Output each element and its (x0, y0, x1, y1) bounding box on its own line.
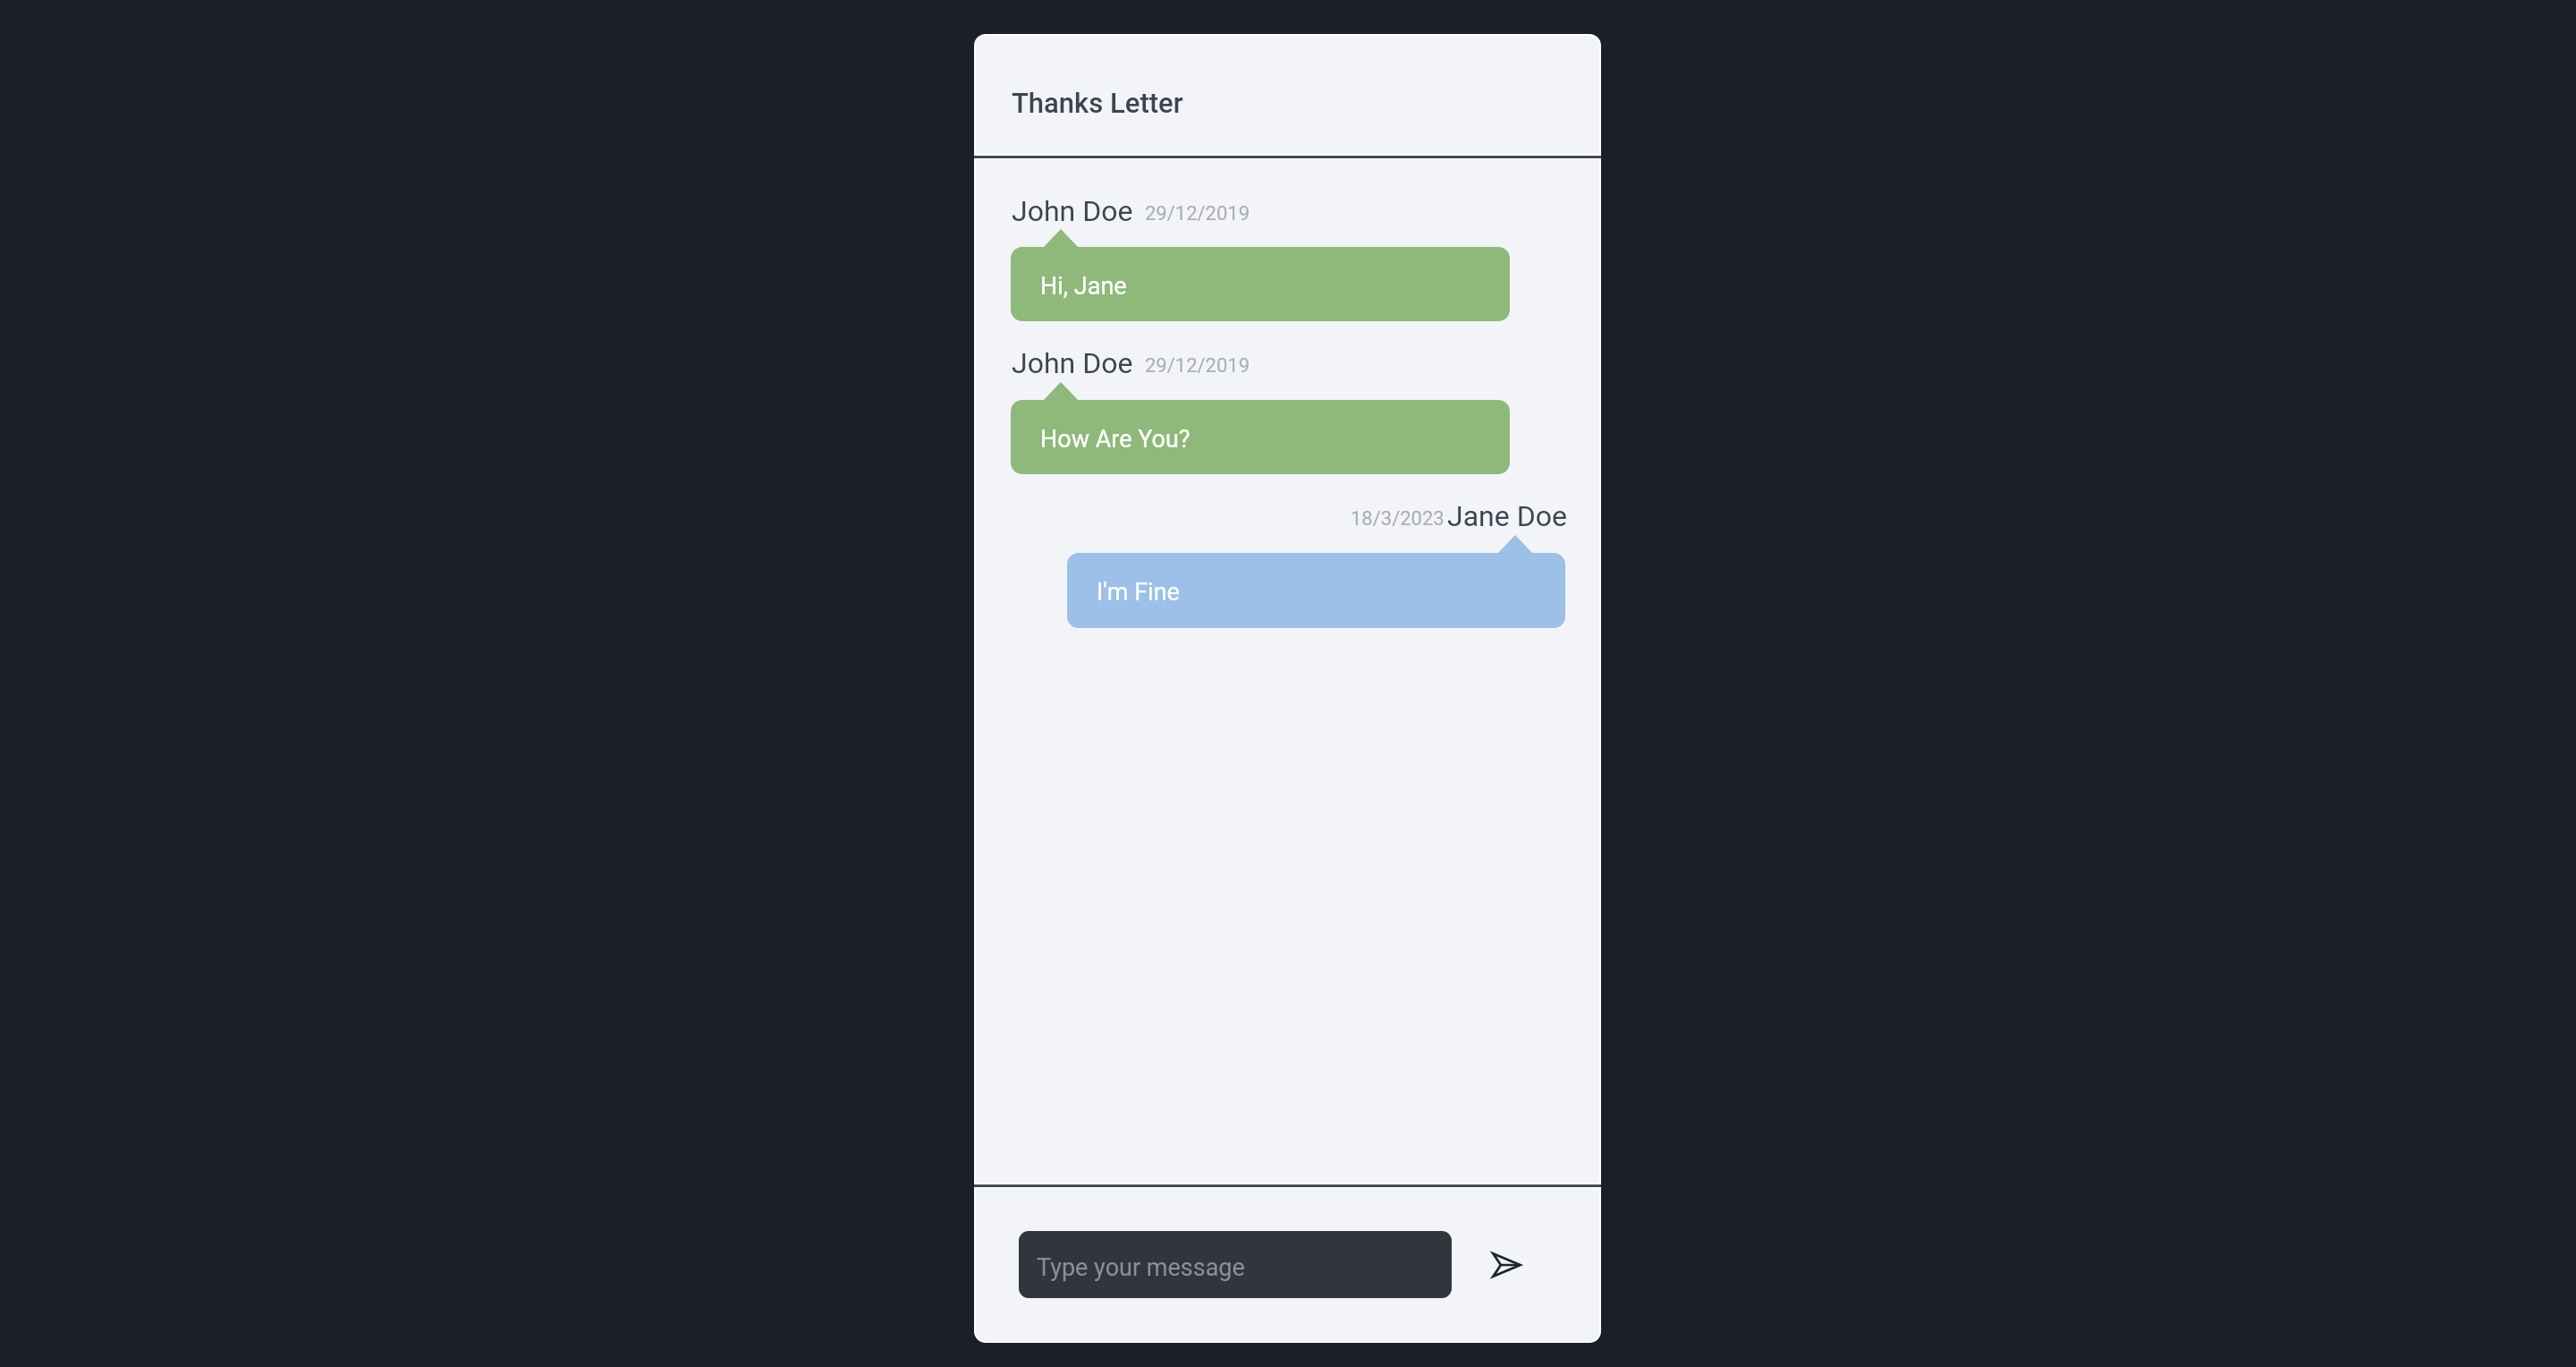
button[interactable]: I'm Fine (1067, 535, 1565, 628)
button[interactable]: Thanks Letter (974, 34, 1601, 153)
button[interactable]: How Are You? (1011, 382, 1510, 474)
button[interactable]: Hi, Jane (1011, 229, 1510, 321)
staticText: Jane Doe (1447, 499, 1567, 533)
staticText: Hi, Jane (1040, 272, 1127, 301)
staticText: John Doe (1012, 194, 1133, 228)
staticText: How Are You? (1040, 425, 1191, 454)
staticText: Thanks Letter (1012, 87, 1183, 119)
button[interactable]: Send message (1473, 1231, 1540, 1298)
staticText: I'm Fine (1097, 578, 1180, 607)
staticText: Type your message (1037, 1253, 1245, 1282)
staticText: John Doe (1012, 346, 1133, 380)
button[interactable]: Type your message (1019, 1231, 1452, 1298)
staticText: 29/12/2019 (1145, 354, 1250, 378)
staticText: 29/12/2019 (1145, 202, 1250, 225)
staticText: 18/3/2023 (1351, 507, 1445, 531)
